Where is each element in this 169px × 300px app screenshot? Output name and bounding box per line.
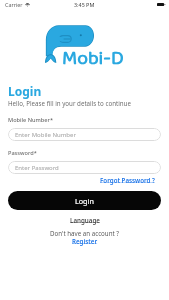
button[interactable]: Enter Mobile Number (8, 128, 161, 141)
button[interactable]: Language (70, 216, 100, 224)
staticText: Mobile Number* (8, 116, 53, 124)
staticText: Mobi-D (62, 43, 124, 76)
staticText: 3:45 PM (74, 1, 95, 8)
button[interactable]: Register (72, 237, 98, 245)
staticText: Carrier (5, 1, 23, 8)
staticText: Hello, Please fill in your details to co… (8, 99, 131, 107)
staticText: Don't have an account ? (50, 229, 120, 237)
staticText: Password* (8, 149, 37, 157)
button[interactable]: Enter Password (8, 161, 161, 174)
button[interactable]: Login (8, 191, 161, 210)
other: Battery (157, 3, 165, 6)
button[interactable]: Forgot Password ? (100, 176, 155, 184)
staticText: Enter Password (15, 164, 59, 172)
staticText: Login (8, 83, 42, 99)
staticText: Enter Mobile Number (15, 131, 76, 139)
staticText: Login (75, 196, 94, 206)
